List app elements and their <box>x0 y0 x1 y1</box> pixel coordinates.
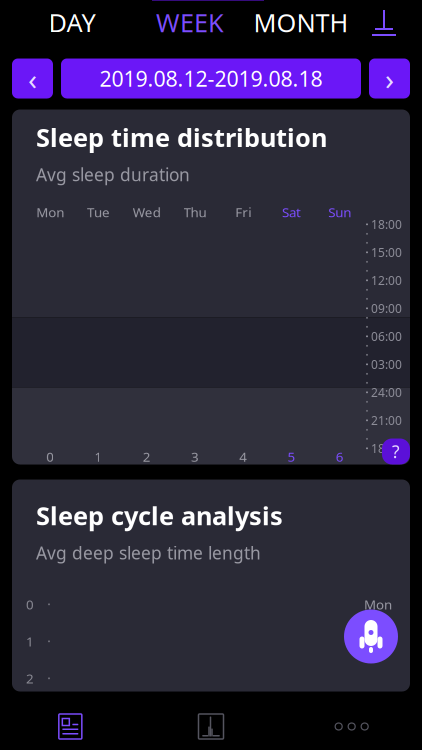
staticText: 4 <box>239 448 247 465</box>
staticText: 03:00 <box>371 356 402 372</box>
staticText: Sat <box>282 203 301 221</box>
staticText: 0 <box>26 595 34 613</box>
button[interactable]: Download <box>356 0 412 44</box>
staticText: Avg deep sleep time length <box>36 541 261 564</box>
staticText: Tue <box>87 203 110 221</box>
staticText: Mon <box>364 595 392 613</box>
staticText: WEEK <box>156 6 224 39</box>
staticText: Sleep time distribution <box>36 120 327 154</box>
staticText: 21:00 <box>371 412 402 428</box>
staticText: Sun <box>328 203 351 221</box>
staticText: ‹ <box>28 59 37 98</box>
staticText: ? <box>392 440 400 463</box>
staticText: Avg sleep duration <box>36 163 190 186</box>
staticText: 6 <box>336 448 344 465</box>
staticText: 0 <box>46 448 54 465</box>
button[interactable]: Previous week <box>12 58 53 98</box>
button[interactable]: Help <box>382 438 410 464</box>
staticText: 09:00 <box>371 300 402 316</box>
staticText: DAY <box>48 6 95 39</box>
staticText: 2 <box>26 669 34 687</box>
staticText: 18:00 <box>371 440 402 456</box>
staticText: 2 <box>143 448 151 465</box>
staticText: › <box>385 59 394 98</box>
staticText: 18:00 <box>371 216 402 232</box>
staticText: Fri <box>235 203 251 221</box>
staticText: 3 <box>191 448 199 465</box>
staticText: 06:00 <box>371 328 402 344</box>
staticText: 5 <box>288 448 296 465</box>
staticText: 15:00 <box>371 244 402 260</box>
staticText: 1 <box>94 448 102 465</box>
button[interactable]: WEEK <box>134 0 246 44</box>
staticText: Sleep cycle analysis <box>36 499 283 532</box>
staticText: Mon <box>36 203 64 221</box>
staticText: 24:00 <box>371 384 402 400</box>
staticText: MONTH <box>253 6 348 39</box>
staticText: Tue <box>369 632 392 650</box>
staticText: 2019.08.12-2019.08.18 <box>99 64 322 93</box>
button[interactable]: More <box>281 699 422 750</box>
staticText: Thu <box>183 203 206 221</box>
button[interactable]: Start <box>344 609 398 663</box>
button[interactable]: Activity <box>141 699 281 750</box>
staticText: 1 <box>26 632 34 650</box>
button[interactable]: MONTH <box>246 0 356 44</box>
button[interactable]: Next week <box>369 58 410 98</box>
button[interactable]: DAY <box>10 0 134 44</box>
button[interactable]: 2019.08.12-2019.08.18 <box>61 58 361 98</box>
staticText: Wed <box>133 203 161 221</box>
button[interactable]: Reports <box>0 699 141 750</box>
staticText: 12:00 <box>371 272 402 288</box>
